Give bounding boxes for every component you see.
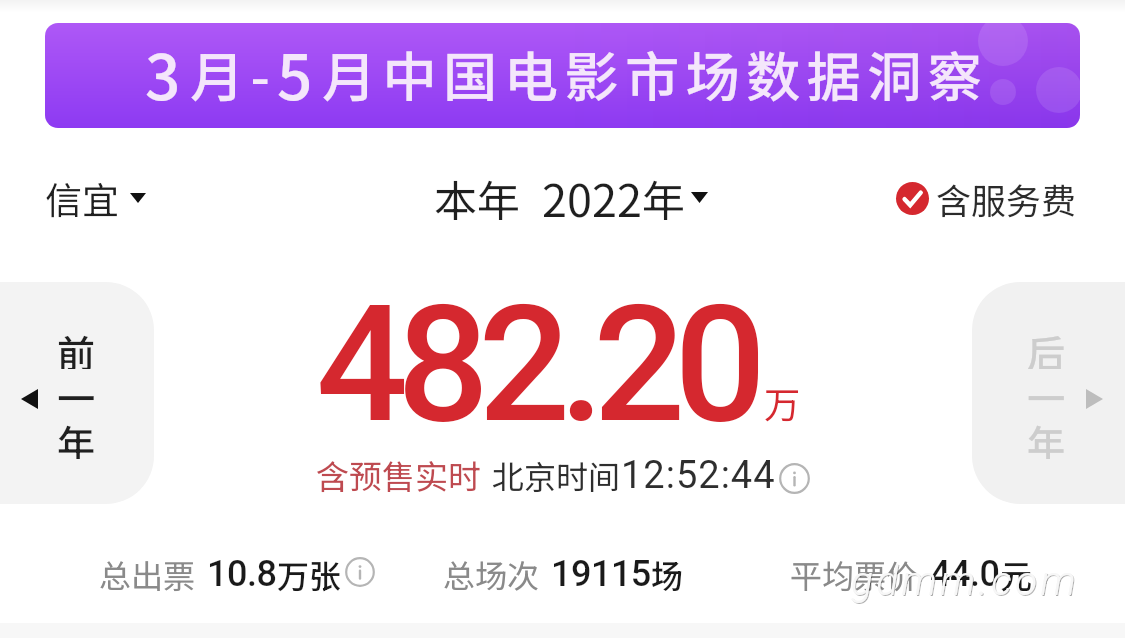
button[interactable]: 本年: [434, 165, 708, 230]
staticText: 44.0: [930, 553, 1000, 595]
staticText: 年: [57, 414, 96, 459]
staticText: 后: [1027, 324, 1066, 369]
staticText: 本年: [434, 167, 520, 229]
staticText: 月-: [190, 34, 277, 112]
button[interactable]: 含服务费: [896, 173, 1077, 224]
staticText: 年: [1027, 414, 1066, 459]
staticText: 元: [1000, 551, 1033, 597]
button[interactable]: 后一年: [972, 282, 1125, 504]
button[interactable]: 总出票: [99, 551, 375, 597]
staticText: 年: [642, 167, 685, 229]
staticText: 万张: [277, 551, 342, 597]
button[interactable]: 前一年: [0, 282, 154, 504]
staticText: 一: [57, 369, 96, 414]
staticText: 平均票价: [790, 551, 919, 597]
staticText: 12:52:44: [621, 453, 776, 498]
staticText: 一: [1027, 369, 1066, 414]
staticText: 含预售实时: [316, 451, 481, 499]
button[interactable]: 3: [45, 23, 1080, 128]
staticText: 19115: [551, 553, 651, 595]
staticText: 月中国电影市场数据洞察: [322, 34, 989, 112]
button[interactable]: 平均票价: [790, 551, 1033, 597]
staticText: gdmm.com: [852, 558, 1080, 606]
staticText: 信宜: [45, 171, 119, 225]
staticText: gdmm.com: [851, 557, 1079, 605]
button[interactable]: 信宜: [45, 171, 150, 225]
staticText: 3: [145, 28, 190, 118]
button[interactable]: 总场次: [443, 551, 684, 597]
staticText: 5: [277, 28, 322, 118]
staticText: 总出票: [99, 551, 196, 597]
staticText: 10.8: [207, 553, 277, 595]
staticText: 万: [764, 376, 801, 428]
staticText: 北京时间: [492, 452, 621, 498]
staticText: 前: [57, 324, 96, 369]
staticText: 482.20: [316, 270, 756, 460]
staticText: 2022: [542, 165, 642, 230]
staticText: 总场次: [443, 551, 540, 597]
staticText: 场: [651, 551, 684, 597]
staticText: 含服务费: [936, 173, 1077, 224]
